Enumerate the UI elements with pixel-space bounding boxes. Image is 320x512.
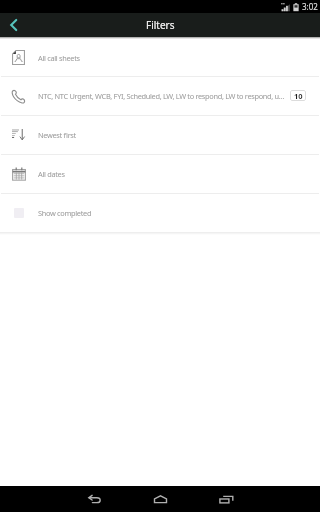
staticText: All dates	[38, 169, 316, 179]
button[interactable]: Show completed	[1, 194, 319, 232]
staticText: NTC, NTC Urgent, WCB, FYI, Scheduled, LW…	[38, 91, 287, 101]
staticText: All call sheets	[38, 53, 316, 63]
button[interactable]: Back	[71, 486, 117, 512]
button[interactable]: NTC, NTC Urgent, WCB, FYI, Scheduled, LW…	[1, 77, 319, 115]
button[interactable]: All call sheets	[1, 39, 319, 76]
staticText: Newest first	[38, 130, 316, 140]
button[interactable]: Newest first	[1, 116, 319, 154]
button[interactable]: Back	[0, 13, 28, 37]
button[interactable]: All dates	[1, 155, 319, 193]
staticText: Filters	[146, 18, 175, 32]
button[interactable]: Recent apps	[203, 486, 249, 512]
button[interactable]: Home	[137, 486, 183, 512]
staticText: Show completed	[38, 208, 316, 218]
staticText: 10	[294, 91, 303, 101]
staticText: 3:02	[302, 1, 318, 12]
